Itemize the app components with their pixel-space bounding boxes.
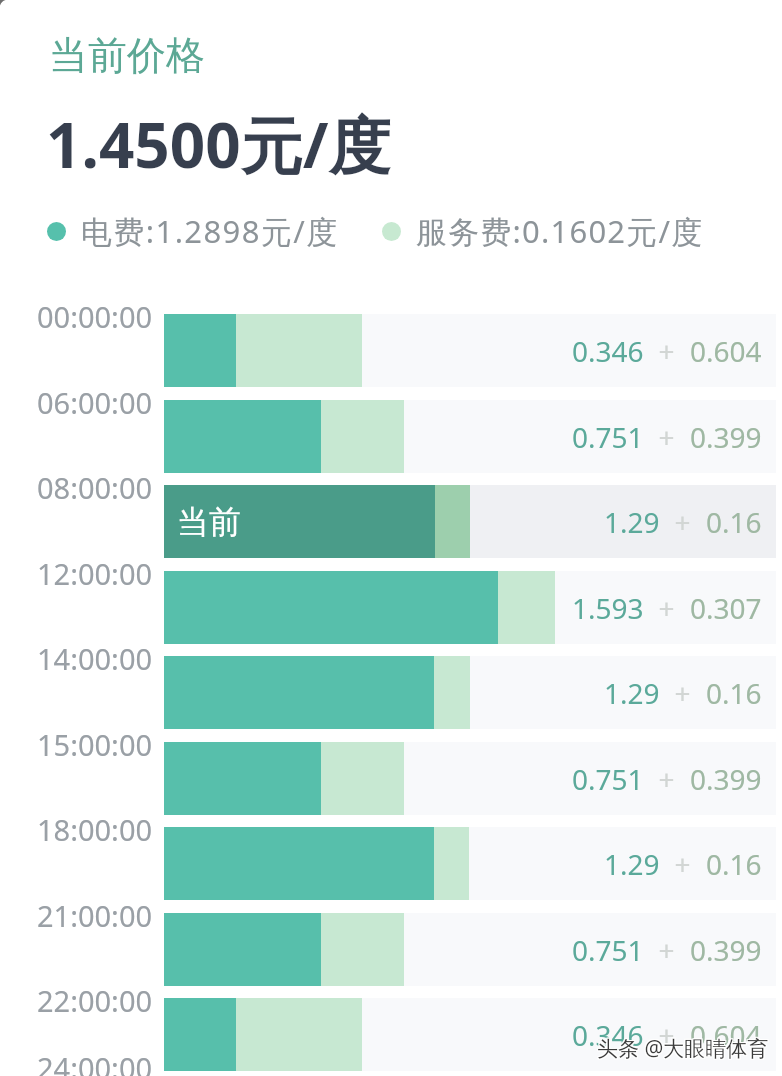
staticText: 0.16 <box>706 674 762 712</box>
staticText: + <box>660 503 706 541</box>
button[interactable]: 服务费:0.1602元/度 <box>382 210 704 252</box>
other: Corner <box>0 0 9 9</box>
staticText: 头条 @大眼睛体育 <box>597 1034 769 1063</box>
staticText: 1.4500元/度 <box>46 102 391 187</box>
button[interactable]: 0.751 <box>164 400 776 473</box>
staticText: 1.29 <box>604 674 660 712</box>
staticText: 头条 @大眼睛体育 <box>596 1033 768 1062</box>
staticText: 0.346 <box>572 1016 644 1054</box>
staticText: 0.604 <box>690 1016 762 1054</box>
staticText: 06:00:00 <box>37 383 153 419</box>
staticText: 头条 @大眼睛体育 <box>598 1034 770 1063</box>
staticText: 08:00:00 <box>37 468 153 504</box>
staticText: 0.751 <box>572 418 644 456</box>
staticText: + <box>644 418 690 456</box>
staticText: 头条 @大眼睛体育 <box>596 1035 768 1064</box>
button[interactable]: 1.593 <box>164 571 776 644</box>
staticText: 头条 @大眼睛体育 <box>598 1035 770 1064</box>
staticText: 头条 @大眼睛体育 <box>597 1033 769 1062</box>
staticText: 0.399 <box>690 418 762 456</box>
staticText: 0.751 <box>572 931 644 969</box>
staticText: 头条 @大眼睛体育 <box>596 1034 768 1063</box>
staticText: 22:00:00 <box>37 981 153 1017</box>
staticText: 0.604 <box>690 332 762 370</box>
staticText: 0.307 <box>690 589 762 627</box>
button[interactable]: 0.751 <box>164 742 776 815</box>
staticText: + <box>644 332 690 370</box>
staticText: 12:00:00 <box>37 554 153 590</box>
staticText: + <box>644 589 690 627</box>
button[interactable]: 当前 <box>164 485 776 558</box>
staticText: 0.399 <box>690 931 762 969</box>
staticText: + <box>644 931 690 969</box>
staticText: 电费:1.2898元/度 <box>81 210 339 252</box>
staticText: 当前价格 <box>49 31 205 80</box>
staticText: + <box>644 1016 690 1054</box>
staticText: 0.399 <box>690 760 762 798</box>
staticText: + <box>660 674 706 712</box>
staticText: 1.29 <box>604 503 660 541</box>
staticText: 1.29 <box>604 845 660 883</box>
staticText: 0.16 <box>706 503 762 541</box>
staticText: 1.593 <box>572 589 644 627</box>
button[interactable]: 1.29 <box>164 656 776 729</box>
staticText: + <box>660 845 706 883</box>
button[interactable]: 0.751 <box>164 913 776 986</box>
staticText: 0.751 <box>572 760 644 798</box>
button[interactable]: 电费:1.2898元/度 <box>47 210 339 252</box>
staticText: 14:00:00 <box>37 639 153 675</box>
staticText: 24:00:00 <box>37 1048 153 1076</box>
staticText: 00:00:00 <box>37 297 153 333</box>
button[interactable]: 1.29 <box>164 827 776 900</box>
button[interactable]: 0.346 <box>164 998 776 1071</box>
staticText: 18:00:00 <box>37 810 153 846</box>
staticText: 当前 <box>177 502 241 542</box>
staticText: 0.16 <box>706 845 762 883</box>
staticText: 21:00:00 <box>37 896 153 932</box>
staticText: 头条 @大眼睛体育 <box>598 1033 770 1062</box>
staticText: 15:00:00 <box>37 725 153 761</box>
staticText: 0.346 <box>572 332 644 370</box>
staticText: + <box>644 760 690 798</box>
staticText: 头条 @大眼睛体育 <box>597 1035 769 1064</box>
button[interactable]: 0.346 <box>164 314 776 387</box>
staticText: 服务费:0.1602元/度 <box>416 210 704 252</box>
